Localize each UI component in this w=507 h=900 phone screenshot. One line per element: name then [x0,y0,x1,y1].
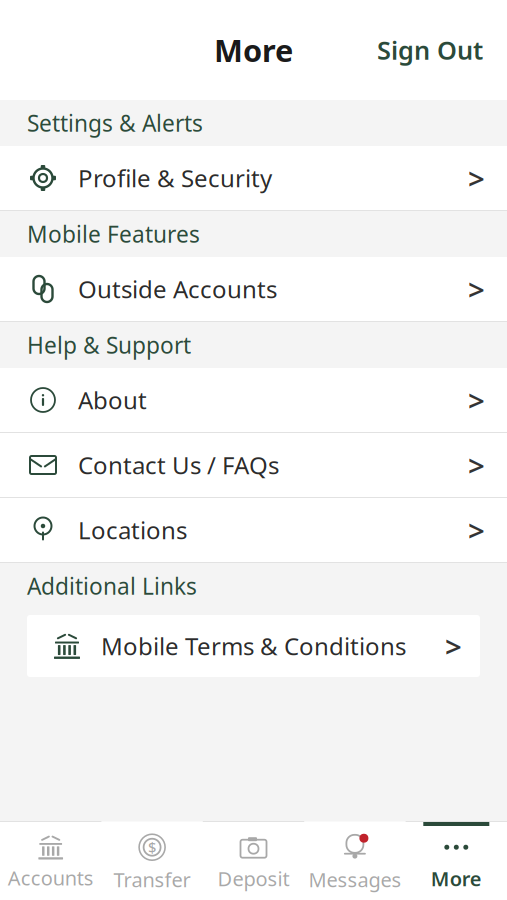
staticText: Additional Links [27,571,197,601]
staticText: > [468,269,485,308]
staticText: > [468,158,485,197]
button[interactable]: Deposit [203,822,304,900]
button[interactable]: Sign Out [363,25,497,75]
staticText: $ [148,837,156,857]
button[interactable]: Contact Us / FAQs [0,433,507,498]
staticText: Mobile Features [27,219,200,249]
button[interactable]: About [0,368,507,433]
staticText: Locations [78,514,187,546]
button[interactable]: Locations [0,498,507,563]
staticText: Profile & Security [78,162,272,194]
staticText: > [445,626,462,665]
staticText: Help & Support [27,330,191,360]
button[interactable]: Profile & Security [0,146,507,211]
staticText: More [214,30,293,70]
button[interactable]: Messages [304,822,406,900]
staticText: Transfer [114,866,191,893]
staticText: Sign Out [377,33,483,67]
staticText: Mobile Terms & Conditions [101,630,406,662]
staticText: Settings & Alerts [27,108,203,138]
staticText: More [431,865,482,892]
staticText: About [78,384,147,416]
button[interactable]: Accounts [0,822,101,900]
staticText: > [468,510,485,549]
staticText: Outside Accounts [78,273,277,305]
button[interactable]: Outside Accounts [0,257,507,322]
staticText: Contact Us / FAQs [78,449,279,481]
staticText: Deposit [217,865,289,892]
staticText: > [468,380,485,419]
staticText: Accounts [8,865,94,891]
button[interactable]: $ [101,822,203,900]
staticText: Messages [308,866,401,893]
button[interactable]: More [406,822,507,900]
button[interactable]: Mobile Terms & Conditions [27,615,480,677]
staticText: > [468,445,485,484]
